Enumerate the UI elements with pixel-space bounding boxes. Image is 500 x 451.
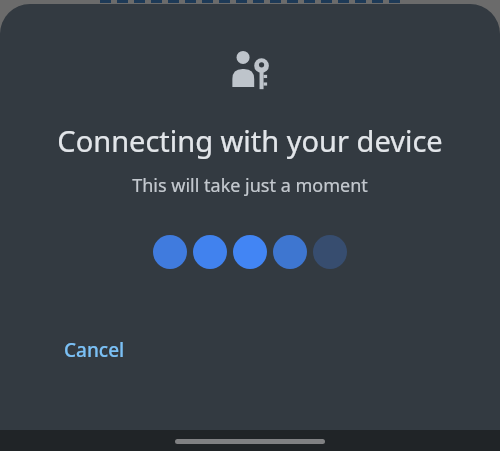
staticText: This will take just a moment xyxy=(16,173,484,198)
staticText: Connecting with your device xyxy=(16,121,484,160)
staticText: Cancel xyxy=(64,337,125,363)
other: Account credentials xyxy=(229,48,271,90)
button[interactable]: Cancel xyxy=(48,327,141,373)
